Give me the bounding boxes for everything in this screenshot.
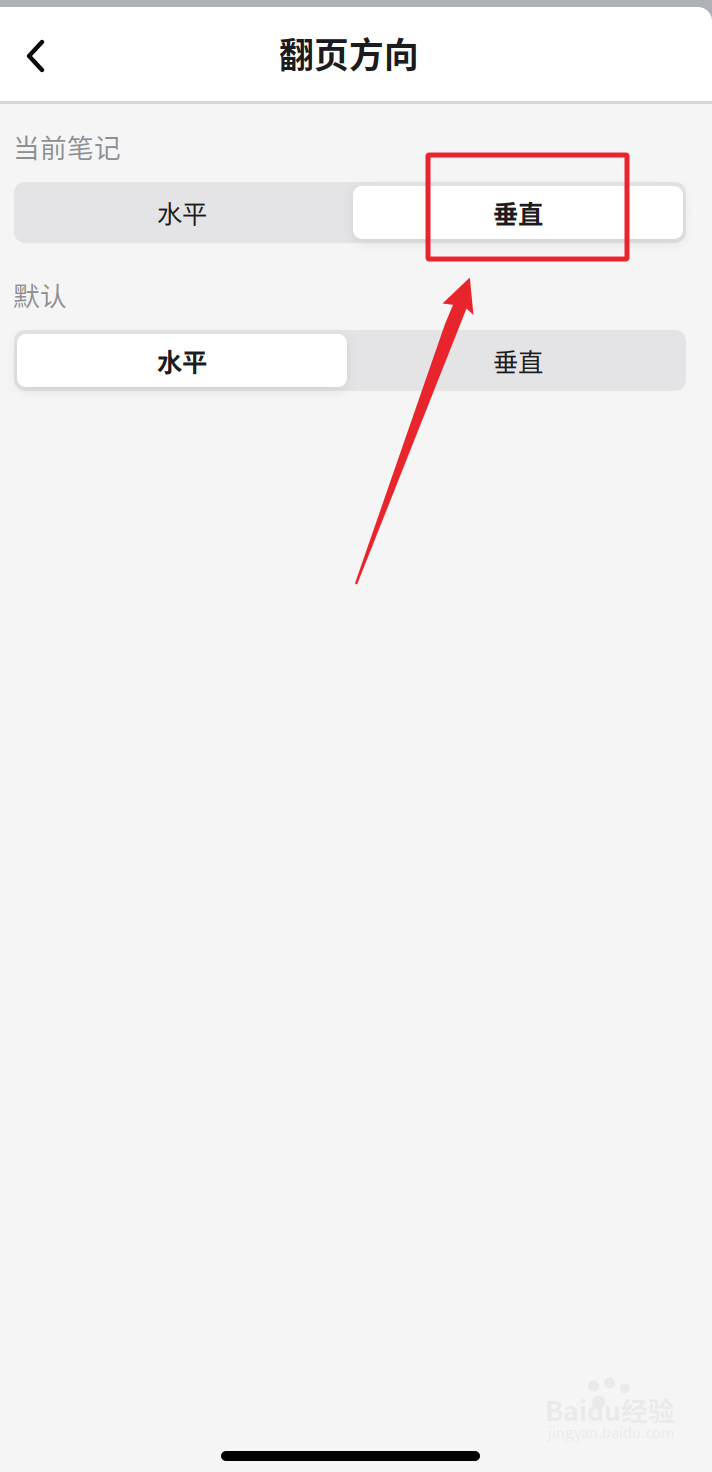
staticText: Baidu经验 bbox=[545, 1390, 675, 1429]
staticText: 垂直 bbox=[493, 342, 543, 379]
button[interactable]: 水平 bbox=[14, 330, 350, 391]
staticText: 水平 bbox=[157, 194, 207, 231]
button[interactable]: 水平 bbox=[14, 182, 350, 243]
staticText: 水平 bbox=[157, 342, 207, 379]
staticText: 默认 bbox=[13, 275, 67, 314]
button[interactable]: 垂直 bbox=[350, 330, 686, 391]
staticText: 当前笔记 bbox=[13, 127, 121, 166]
staticText: 翻页方向 bbox=[279, 28, 419, 78]
staticText: 垂直 bbox=[493, 194, 543, 231]
button[interactable]: 垂直 bbox=[350, 182, 686, 243]
button[interactable]: Back bbox=[10, 23, 64, 89]
staticText: jingyan.baidu.com bbox=[548, 1421, 675, 1442]
